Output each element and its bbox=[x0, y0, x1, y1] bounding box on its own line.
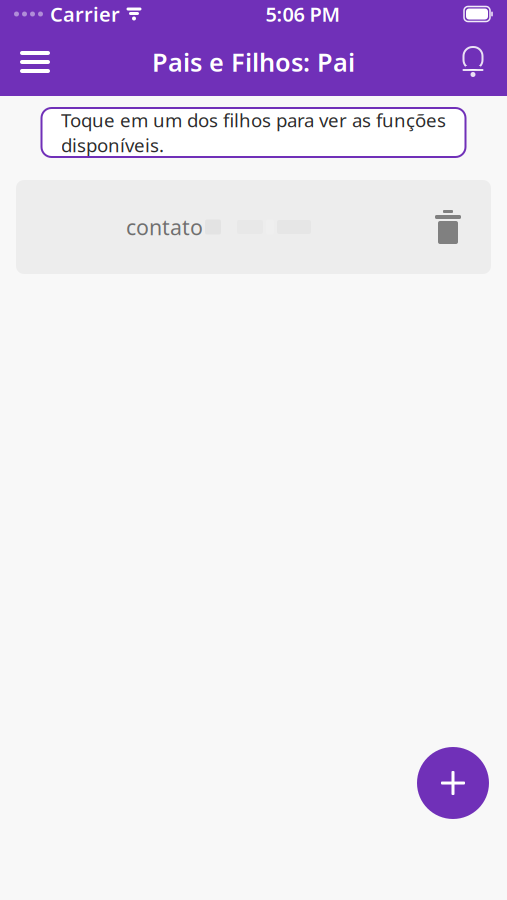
staticText: contato bbox=[126, 213, 203, 241]
staticText: Carrier bbox=[50, 1, 120, 27]
button[interactable]: Notificações bbox=[449, 39, 497, 85]
staticText: Toque em um dos filhos para ver as funçõ… bbox=[61, 108, 446, 157]
button[interactable]: Adicionar bbox=[417, 747, 489, 819]
button[interactable]: contato bbox=[16, 180, 491, 274]
staticText: Pais e Filhos: Pai bbox=[152, 45, 355, 79]
staticText: 5:06 PM bbox=[265, 1, 340, 27]
button[interactable]: Menu bbox=[9, 39, 61, 85]
